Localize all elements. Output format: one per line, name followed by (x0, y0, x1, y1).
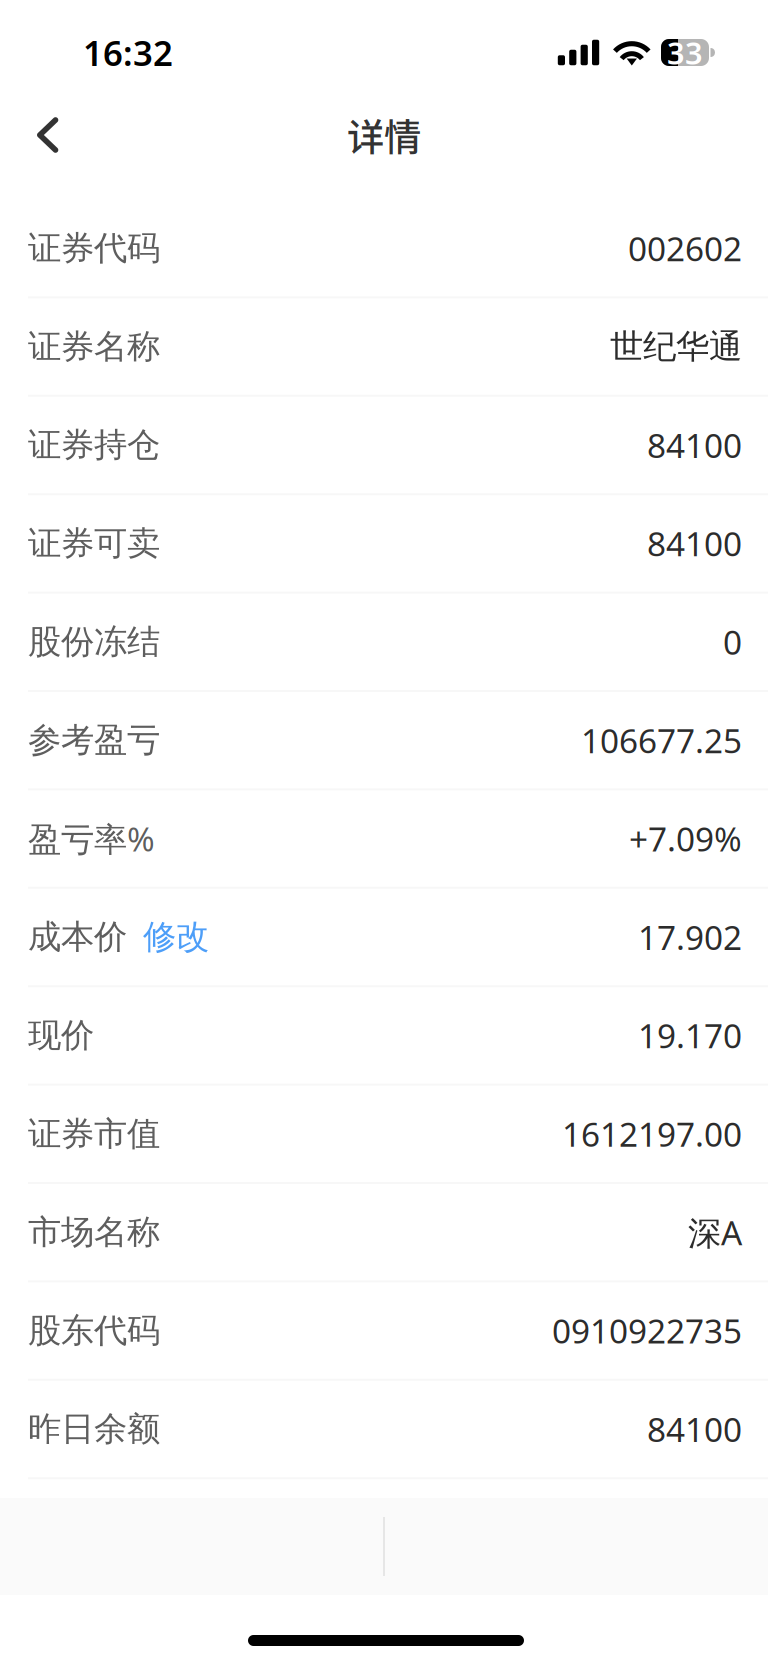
staticText: 参考盈亏 (28, 720, 160, 761)
button[interactable]: 修改 (127, 916, 209, 957)
staticText: 84100 (647, 423, 742, 467)
staticText: 84100 (647, 1407, 742, 1451)
staticText: 106677.25 (581, 718, 742, 762)
staticText: 盈亏率% (28, 816, 155, 861)
staticText: 17.902 (638, 915, 742, 959)
staticText: 深A (688, 1210, 742, 1254)
staticText: 证券市值 (28, 1113, 160, 1154)
staticText: 详情 (347, 108, 421, 162)
staticText: +7.09% (629, 816, 742, 861)
button[interactable]: Back (0, 108, 80, 162)
staticText: 1612197.00 (562, 1112, 742, 1156)
staticText: 证券名称 (28, 326, 160, 367)
staticText: 16:32 (83, 29, 173, 75)
staticText: 证券可卖 (28, 523, 160, 564)
staticText: 股东代码 (28, 1310, 160, 1351)
staticText: 33 (667, 32, 703, 73)
staticText: 证券持仓 (28, 424, 160, 465)
staticText: 证券代码 (28, 228, 160, 269)
staticText: 昨日余额 (28, 1408, 160, 1449)
staticText: 市场名称 (28, 1212, 160, 1253)
staticText: 股份冻结 (28, 621, 160, 662)
staticText: 修改 (143, 916, 209, 957)
staticText: 19.170 (638, 1013, 742, 1058)
staticText: 0910922735 (552, 1308, 742, 1353)
staticText: 002602 (628, 226, 742, 270)
staticText: 0 (723, 620, 742, 664)
staticText: 成本价 (28, 916, 127, 957)
staticText: 84100 (647, 521, 742, 566)
staticText: 世纪华通 (610, 326, 742, 367)
staticText: 现价 (28, 1015, 94, 1056)
